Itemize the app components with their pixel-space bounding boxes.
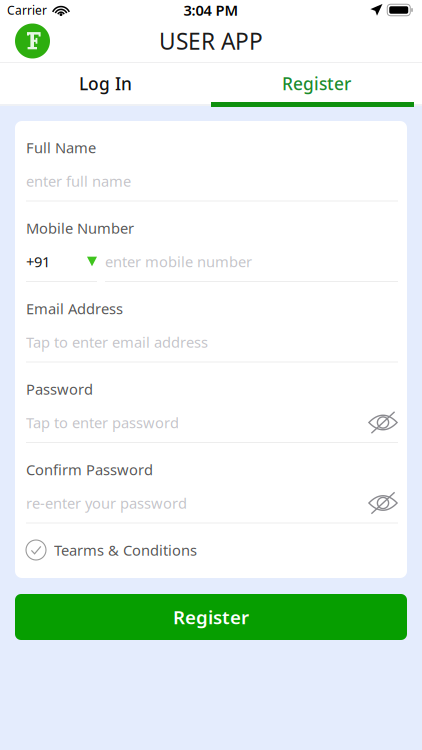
button[interactable]: Register [211,63,422,104]
staticText: Log In [79,72,132,95]
staticText: Password [26,379,93,399]
staticText: Tap to enter password [26,413,179,432]
staticText: re-enter your password [26,493,187,513]
staticText: Register [282,72,351,95]
staticText: Full Name [26,138,96,157]
button[interactable]: Log In [0,63,211,104]
staticText: Tap to enter email address [26,332,208,352]
staticText: enter mobile number [105,252,252,271]
staticText: USER APP [159,26,263,56]
staticText: Mobile Number [26,218,134,238]
button[interactable]: Register [15,594,407,640]
staticText: Register [173,605,249,629]
staticText: Carrier [7,2,47,18]
staticText: +91 [26,252,50,271]
staticText: Email Address [26,299,123,318]
staticText: Tearms & Conditions [54,540,197,560]
button[interactable]: Tearms & Conditions [26,523,398,576]
staticText: Confirm Password [26,460,153,479]
staticText: enter full name [26,171,131,191]
staticText: 3:04 PM [183,0,238,20]
